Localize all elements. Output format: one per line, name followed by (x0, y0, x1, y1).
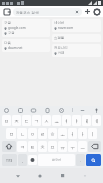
staticText: ㅗ (60, 131, 65, 137)
button[interactable]: ㅗ (58, 128, 67, 139)
button[interactable]: , (18, 154, 27, 166)
staticText: 카페 (58, 51, 65, 55)
button[interactable]: ㅍ (48, 141, 57, 152)
staticText: 자동쿠스 검색 (16, 10, 75, 15)
button[interactable]: ㅌ (28, 141, 37, 152)
button[interactable]: ㅓ (68, 128, 77, 139)
staticText: ㅑ (74, 118, 79, 124)
button[interactable]: Voice input (93, 107, 100, 114)
button[interactable]: Shift (2, 141, 16, 152)
button[interactable]: Search (86, 154, 101, 166)
staticText: ㄹ (40, 131, 45, 137)
button[interactable]: ㅏ (78, 128, 87, 139)
staticText: naver.com (58, 26, 74, 30)
button[interactable]: Google (3, 107, 10, 114)
staticText: ㅓ (70, 131, 75, 137)
staticText: , (22, 158, 23, 163)
staticText: 구글 (4, 21, 11, 25)
button[interactable]: Settings (58, 107, 65, 114)
button[interactable]: 구글 (2, 19, 50, 37)
staticText: ㅏ (80, 131, 85, 137)
button[interactable]: Backspace (88, 141, 101, 152)
button[interactable]: 한국어 (38, 154, 75, 166)
staticText: ㅣ (90, 131, 95, 137)
button[interactable]: Hide keyboard (80, 171, 90, 181)
button[interactable]: ㅕ (62, 115, 71, 126)
button[interactable]: ㅈ (12, 115, 21, 126)
staticText: 구글 (8, 31, 15, 35)
button[interactable]: ㅋ (17, 141, 27, 152)
button[interactable]: ㅁ (6, 128, 16, 139)
button[interactable]: ㅎ (48, 128, 57, 139)
staticText: ㅍ (50, 144, 55, 150)
button[interactable]: ㅡ (78, 141, 87, 152)
button[interactable]: ㅇ (28, 128, 37, 139)
button[interactable]: ㄴ (17, 128, 27, 139)
button[interactable]: Recents (58, 171, 68, 181)
button[interactable]: ㅛ (52, 115, 61, 126)
button[interactable]: New tab (83, 7, 92, 16)
staticText: ㅋ (20, 144, 25, 150)
staticText: google.com (8, 26, 26, 30)
button[interactable]: 네이버 (52, 19, 101, 32)
staticText: ㅈ (14, 118, 19, 124)
button[interactable]: Clipboard (44, 107, 51, 114)
staticText: ㅁ (9, 131, 14, 137)
staticText: 네이버 (54, 21, 65, 25)
button[interactable]: ㅜ (68, 141, 77, 152)
staticText: ㄷ (24, 118, 29, 124)
button[interactable]: Close (2, 7, 11, 16)
button[interactable]: 자동쿠스 검색 (13, 8, 82, 16)
button[interactable]: ㅔ (92, 115, 101, 126)
staticText: ㄴ (20, 131, 25, 137)
button[interactable]: Sticker (17, 107, 24, 114)
button[interactable]: ㅊ (38, 141, 47, 152)
staticText: ㅐ (84, 118, 89, 124)
button[interactable]: Language (28, 155, 37, 165)
staticText: ㅡ (80, 144, 85, 150)
button[interactable]: ㅠ (58, 141, 67, 152)
staticText: ㅜ (70, 144, 75, 150)
staticText: ㅔ (94, 118, 99, 124)
staticText: ㄱ (34, 118, 39, 124)
staticText: 다음 (4, 41, 11, 45)
button[interactable]: Back (13, 171, 23, 181)
button[interactable]: ㅐ (82, 115, 91, 126)
staticText: ㅌ (30, 144, 35, 150)
staticText: !1?3 (6, 158, 13, 163)
button[interactable]: Settings (92, 7, 101, 16)
button[interactable]: 커뮤니티 (52, 44, 101, 57)
button[interactable]: ㄷ (22, 115, 31, 126)
button[interactable]: ㅅ (42, 115, 51, 126)
staticText: ㅅ (44, 118, 49, 124)
button[interactable]: Home (35, 171, 45, 181)
button[interactable]: GIF (30, 107, 37, 114)
staticText: 쇼핑몰 (54, 36, 65, 40)
staticText: ㅂ (4, 118, 9, 124)
button[interactable]: More (79, 107, 86, 114)
staticText: . (80, 158, 81, 163)
staticText: ㅠ (60, 144, 65, 150)
button[interactable]: ㄹ (38, 128, 47, 139)
staticText: ㅊ (40, 144, 45, 150)
button[interactable]: 다음 (2, 39, 50, 52)
staticText: 커뮤니티 (54, 46, 68, 50)
button[interactable]: 쇼핑몰 (52, 34, 101, 42)
staticText: ㅎ (50, 131, 55, 137)
staticText: ㅇ (30, 131, 35, 137)
staticText: daum.net (8, 46, 23, 50)
button[interactable]: ㅑ (72, 115, 81, 126)
staticText: ㅛ (54, 118, 59, 124)
staticText: ㅕ (64, 118, 69, 124)
button[interactable]: ㅣ (88, 128, 97, 139)
button[interactable]: ㄱ (32, 115, 41, 126)
staticText: 한국어 (52, 158, 61, 162)
button[interactable]: !1?3 (2, 154, 17, 166)
button[interactable]: ㅂ (2, 115, 11, 126)
